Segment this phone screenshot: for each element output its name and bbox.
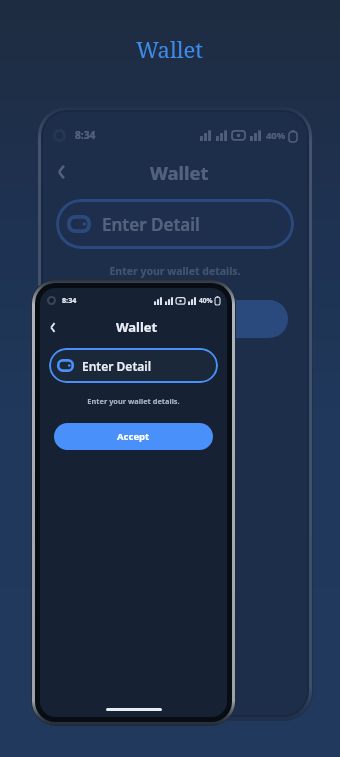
button[interactable]: Accept bbox=[54, 423, 213, 450]
staticText: Accept bbox=[152, 310, 198, 328]
staticText: Enter Detail bbox=[102, 213, 200, 236]
staticText: Wallet bbox=[136, 34, 204, 64]
staticText: Enter your wallet details. bbox=[43, 264, 307, 278]
staticText: Wallet bbox=[150, 160, 209, 185]
staticText: Wallet bbox=[116, 318, 158, 336]
staticText: Enter Detail bbox=[82, 358, 152, 374]
button[interactable]: Back bbox=[49, 160, 73, 184]
button[interactable]: Accept bbox=[62, 300, 288, 338]
button[interactable]: Enter Detail bbox=[49, 348, 218, 383]
staticText: 8:34 bbox=[75, 128, 96, 142]
staticText: 40% bbox=[266, 129, 286, 142]
staticText: Accept bbox=[117, 430, 150, 443]
staticText: 8:34 bbox=[62, 295, 77, 305]
staticText: Enter your wallet details. bbox=[40, 396, 227, 406]
staticText: 40% bbox=[199, 296, 213, 305]
button[interactable]: Enter Detail bbox=[56, 199, 294, 249]
button[interactable]: Back bbox=[44, 319, 61, 336]
